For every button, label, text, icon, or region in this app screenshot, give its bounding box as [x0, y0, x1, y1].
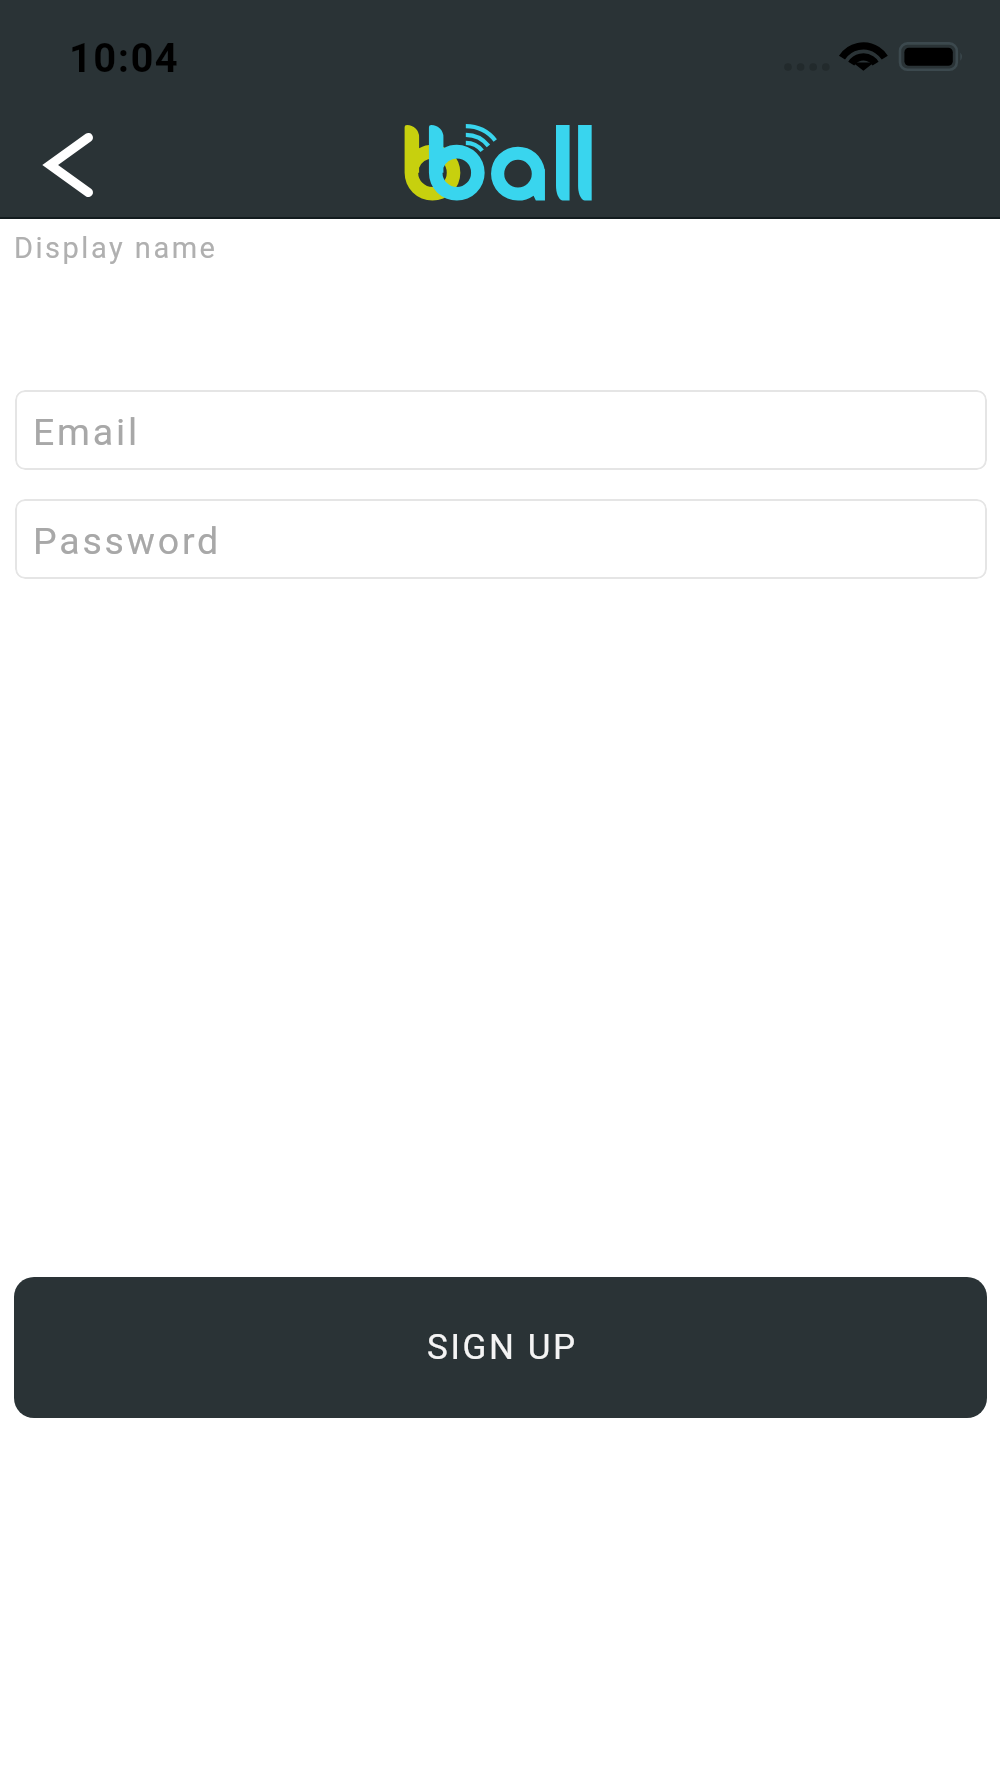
staticText: 10:04: [69, 35, 180, 82]
button[interactable]: Back: [21, 117, 117, 213]
staticText: Display name: [14, 231, 218, 265]
button[interactable]: Password: [15, 499, 987, 579]
staticText: Email: [33, 410, 140, 454]
staticText: Password: [33, 519, 222, 563]
button[interactable]: SIGN UP: [14, 1277, 987, 1418]
button[interactable]: Email: [15, 390, 987, 470]
staticText: SIGN UP: [427, 1327, 578, 1368]
